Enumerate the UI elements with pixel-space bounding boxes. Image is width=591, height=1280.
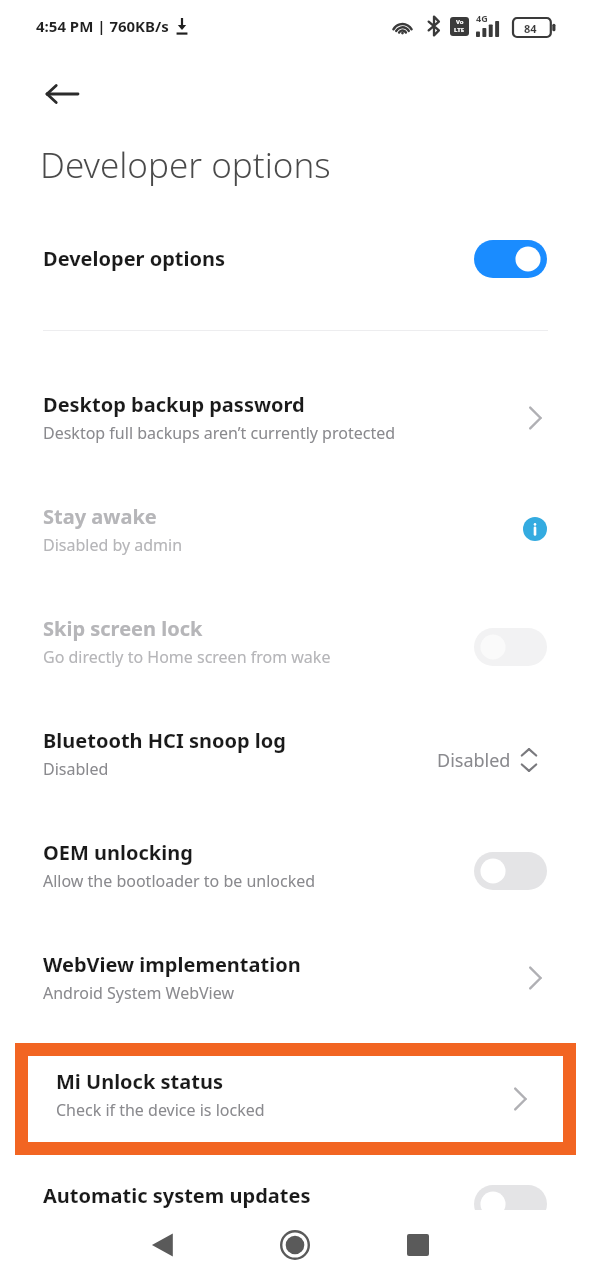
staticText: Allow the bootloader to be unlocked bbox=[43, 870, 316, 892]
staticText: Android System WebView bbox=[43, 982, 235, 1004]
button[interactable]: OEM unlocking bbox=[0, 823, 591, 935]
staticText: Go directly to Home screen from wake bbox=[43, 646, 331, 668]
button[interactable]: Stay awake bbox=[0, 487, 591, 599]
button[interactable]: Skip screen lock bbox=[0, 599, 591, 711]
staticText: Disabled bbox=[437, 748, 511, 773]
staticText: Desktop backup password bbox=[43, 391, 305, 418]
staticText: Developer options bbox=[43, 245, 226, 272]
button[interactable]: Developer options bbox=[0, 216, 591, 304]
button[interactable]: Mi Unlock status bbox=[15, 1043, 576, 1155]
staticText: Mi Unlock status bbox=[56, 1068, 223, 1095]
button[interactable]: Back bbox=[132, 1221, 192, 1269]
button[interactable]: Home bbox=[265, 1221, 325, 1269]
staticText: Check if the device is locked bbox=[56, 1099, 265, 1121]
staticText: Skip screen lock bbox=[43, 615, 203, 642]
staticText: LTE bbox=[454, 26, 465, 34]
staticText: 4:54 PM | 760KB/s bbox=[36, 16, 169, 36]
button[interactable]: Info bbox=[522, 516, 548, 542]
button[interactable]: Recent apps bbox=[388, 1221, 448, 1269]
staticText: Disabled bbox=[43, 758, 109, 780]
button[interactable]: Automatic system updates bbox=[0, 1168, 591, 1220]
staticText: OEM unlocking bbox=[43, 839, 193, 866]
staticText: Bluetooth HCI snoop log bbox=[43, 727, 286, 754]
staticText: Disabled by admin bbox=[43, 534, 183, 556]
staticText: 4G bbox=[476, 12, 488, 24]
staticText: Stay awake bbox=[43, 503, 157, 530]
staticText: 84 bbox=[524, 21, 537, 36]
button[interactable]: Bluetooth HCI snoop log bbox=[0, 711, 591, 823]
button[interactable]: Back bbox=[28, 62, 96, 126]
button[interactable]: Desktop backup password bbox=[0, 375, 591, 487]
staticText: Vo bbox=[456, 18, 464, 26]
staticText: WebView implementation bbox=[43, 951, 301, 978]
button[interactable]: WebView implementation bbox=[0, 935, 591, 1047]
staticText: Desktop full backups aren’t currently pr… bbox=[43, 422, 396, 444]
staticText: Automatic system updates bbox=[43, 1182, 311, 1209]
staticText: Developer options bbox=[40, 141, 331, 189]
